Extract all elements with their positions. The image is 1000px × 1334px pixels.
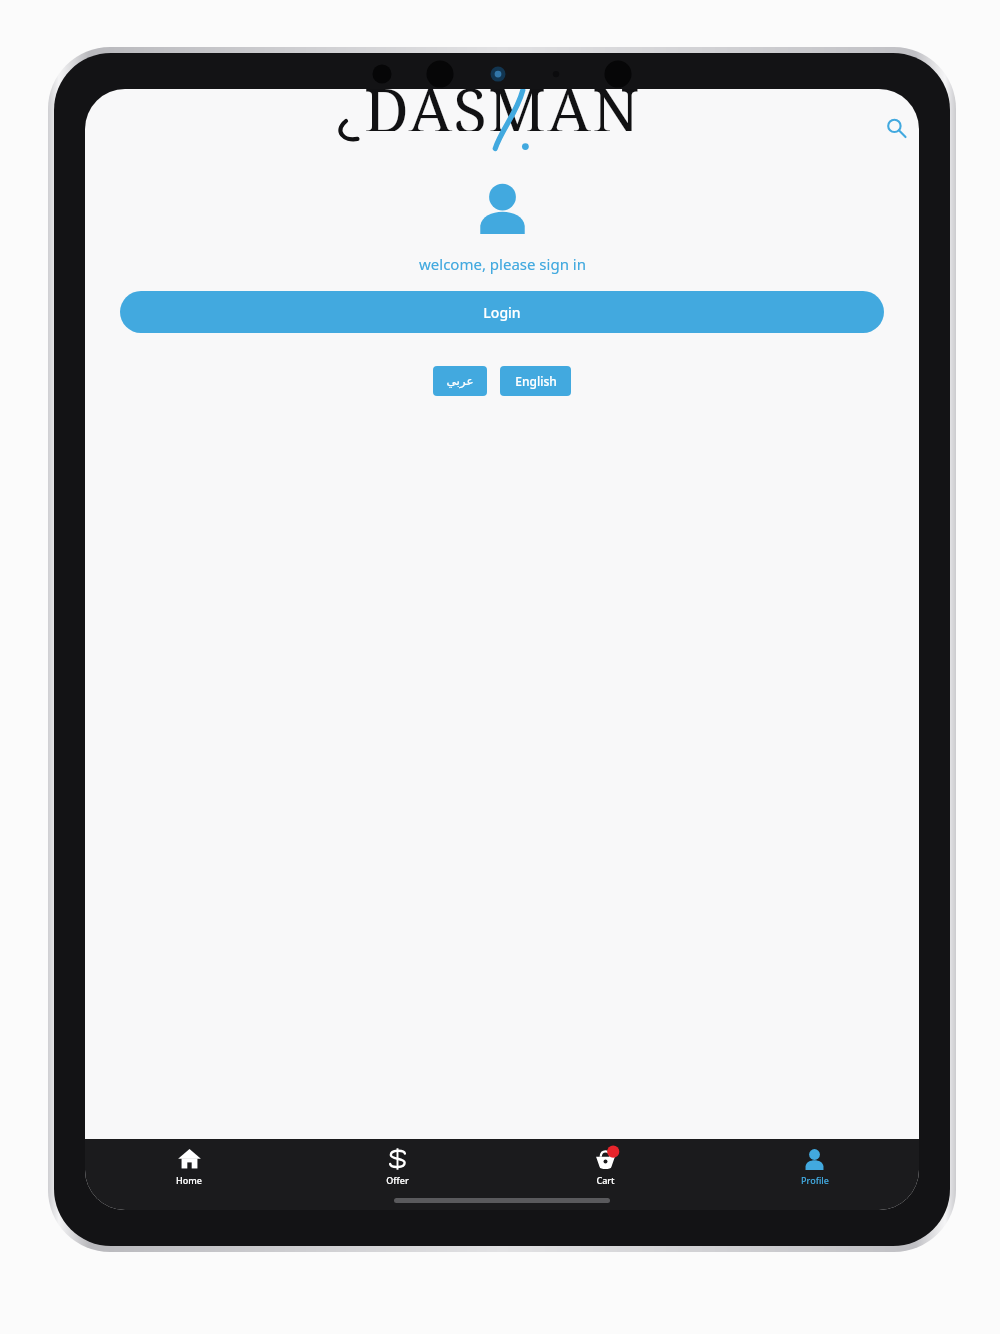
staticText: English [515,373,557,389]
staticText: Cart [596,1174,615,1186]
staticText: Home [176,1174,202,1186]
staticText: Profile [801,1174,829,1186]
button[interactable]: Cart [501,1145,710,1189]
button[interactable]: English [500,366,571,396]
button[interactable]: Offer [293,1145,501,1189]
button[interactable]: Search [873,105,919,151]
button[interactable]: Login [120,291,884,333]
button[interactable]: عربي [433,366,487,396]
staticText: Offer [386,1174,409,1186]
staticText: Login [483,303,521,322]
staticText: DASMAN [242,89,762,131]
staticText: عربي [446,374,474,388]
button[interactable]: Profile [710,1145,919,1189]
button[interactable]: Home [85,1145,293,1189]
staticText: welcome, please sign in [419,254,586,274]
